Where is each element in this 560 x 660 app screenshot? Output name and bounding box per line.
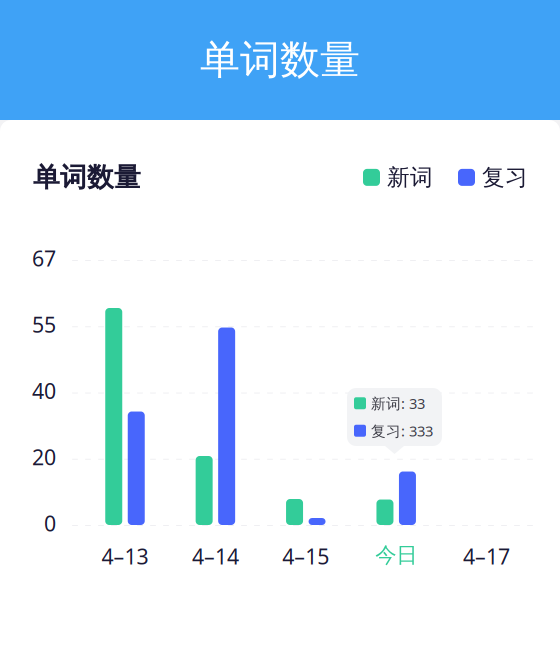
staticText: 20: [32, 443, 56, 471]
staticText: 67: [32, 244, 56, 272]
staticText: 4–15: [282, 542, 329, 570]
staticText: 今日: [375, 542, 417, 568]
staticText: 40: [32, 376, 56, 405]
staticText: 4–14: [192, 542, 239, 570]
staticText: 4–13: [101, 542, 148, 570]
staticText: 新词: [387, 163, 433, 191]
staticText: 新词: 33: [371, 393, 425, 413]
staticText: 复习: 333: [371, 421, 433, 440]
staticText: 55: [32, 310, 56, 338]
staticText: 复习: [482, 163, 528, 191]
staticText: 4–17: [463, 542, 510, 570]
staticText: 单词数量: [33, 161, 141, 194]
staticText: 0: [44, 509, 56, 537]
staticText: 单词数量: [200, 35, 360, 84]
